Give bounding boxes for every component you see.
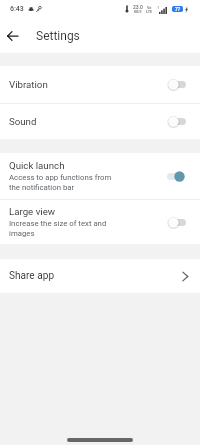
- staticText: Quick launch: [9, 160, 65, 171]
- staticText: Increase the size of text and images: [9, 219, 117, 238]
- button[interactable]: Back: [0, 18, 25, 53]
- staticText: 77: [175, 7, 181, 12]
- button[interactable]: Vibration: [0, 66, 200, 103]
- staticText: Large view: [9, 206, 56, 217]
- button[interactable]: Large view: [0, 200, 200, 244]
- staticText: LTE: [146, 9, 153, 13]
- staticText: Access to app functions from the notific…: [9, 173, 117, 192]
- staticText: Settings: [36, 29, 80, 43]
- button[interactable]: Share app: [0, 259, 200, 293]
- button[interactable]: Quick launch: [0, 153, 200, 199]
- staticText: Vibration: [9, 79, 48, 90]
- staticText: KB/S: [134, 10, 142, 14]
- staticText: 6:43: [10, 5, 24, 13]
- button[interactable]: Sound: [0, 104, 200, 139]
- staticText: 1: [157, 5, 160, 10]
- staticText: 23.0: [133, 4, 143, 10]
- staticText: Sound: [9, 116, 37, 127]
- staticText: Share app: [9, 270, 55, 282]
- staticText: Vo: [147, 5, 152, 9]
